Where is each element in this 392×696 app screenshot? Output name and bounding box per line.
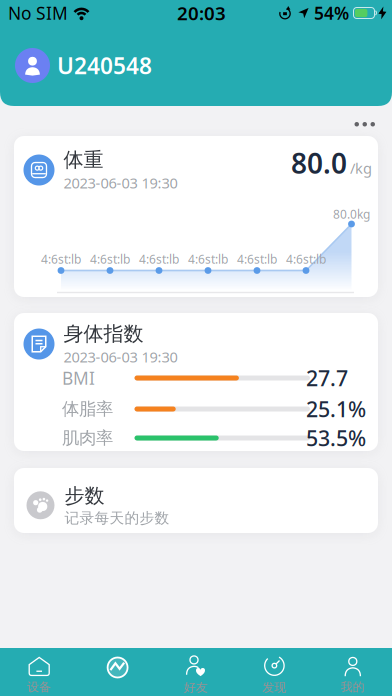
staticText: U240548 [57,50,152,80]
staticText: 25.1% [306,395,366,423]
staticText: 身体指数 [63,321,143,346]
button[interactable]: 设备 [0,650,78,694]
button[interactable]: 账户 U240548 [0,26,392,83]
staticText: 54% [314,1,349,24]
staticText: 20:03 [177,1,226,25]
staticText: 80.0 [291,144,347,182]
button[interactable]: 步数 [14,468,378,533]
staticText: 好友 [184,680,208,695]
staticText: 4:6st:lb [188,251,228,267]
staticText: 80.0kg [333,206,370,222]
staticText: 我的 [341,680,365,694]
staticText: 27.7 [306,364,348,392]
staticText: 体脂率 [62,398,113,420]
staticText: 2023-06-03 19:30 [63,347,177,367]
staticText: No SIM [8,1,68,24]
staticText: 设备 [27,680,51,694]
staticText: 步数 [64,483,104,508]
staticText: 4:6st:lb [237,251,277,267]
button[interactable]: 好友 [157,649,235,695]
staticText: 4:6st:lb [286,251,326,267]
staticText: 记录每天的步数 [64,509,169,527]
button[interactable]: 更多 [0,106,392,126]
staticText: 发现 [262,680,286,695]
staticText: 4:6st:lb [90,251,130,267]
staticText: 2023-06-03 19:30 [63,173,177,193]
staticText: 4:6st:lb [139,251,179,267]
staticText: 肌肉率 [62,427,113,449]
staticText: 体重 [63,147,103,172]
staticText: 53.5% [306,424,366,452]
button[interactable]: 身体指数 [14,313,378,451]
staticText: 4:6st:lb [41,251,81,267]
button[interactable]: 数据 [78,661,157,683]
button[interactable]: 体重 [14,136,378,297]
staticText: /kg [350,158,372,178]
staticText: BMI [62,366,95,389]
button[interactable]: 我的 [314,650,392,694]
button[interactable]: 发现 [235,649,314,695]
